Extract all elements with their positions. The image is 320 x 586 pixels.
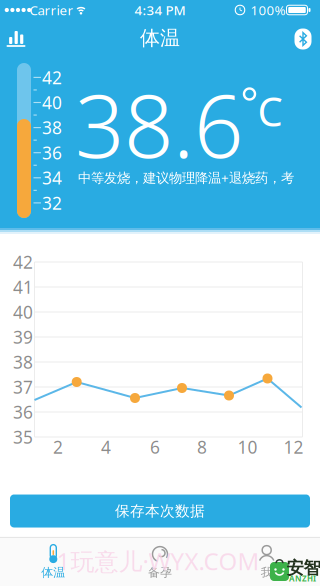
staticText: 我 <box>261 565 273 580</box>
staticText: 39 <box>13 325 33 348</box>
staticText: 2 <box>53 435 63 458</box>
staticText: 38 <box>13 350 33 373</box>
button[interactable]: 体温 <box>8 539 98 585</box>
staticText: 体温 <box>140 26 180 50</box>
button[interactable]: 备孕 <box>115 539 205 585</box>
staticText: 34 <box>42 166 62 189</box>
staticText: 安智 <box>286 557 320 579</box>
staticText: 体温 <box>41 565 65 580</box>
staticText: 4 <box>101 435 111 458</box>
staticText: 4:34 PM <box>134 1 185 19</box>
staticText: 42 <box>42 66 62 89</box>
button[interactable]: 我 <box>222 539 312 585</box>
staticText: 37 <box>13 375 33 398</box>
staticText: 42 <box>13 250 33 273</box>
staticText: Carrier <box>29 1 73 19</box>
staticText: 6 <box>150 435 160 458</box>
staticText: 1玩意儿·WYX.COM <box>56 545 259 577</box>
staticText: 40 <box>13 300 33 323</box>
staticText: C <box>257 84 282 137</box>
staticText: 保存本次数据 <box>115 502 205 520</box>
staticText: 40 <box>42 91 62 114</box>
staticText: 36 <box>42 141 62 164</box>
staticText: 32 <box>42 191 62 214</box>
button[interactable]: 历史记录 <box>6 26 32 52</box>
staticText: ANZHI <box>289 573 316 584</box>
button[interactable]: 蓝牙 <box>294 28 311 49</box>
staticText: 中等发烧，建议物理降温+退烧药，考 <box>78 169 294 186</box>
staticText: 100% <box>250 1 285 19</box>
staticText: 36 <box>13 400 33 423</box>
staticText: 35 <box>13 425 33 448</box>
staticText: 38.6 <box>75 66 243 182</box>
staticText: 备孕 <box>148 565 172 580</box>
staticText: 38 <box>42 116 62 139</box>
staticText: 8 <box>197 435 207 458</box>
staticText: 12 <box>283 435 303 458</box>
button[interactable]: 保存本次数据 <box>10 494 310 527</box>
staticText: 41 <box>13 275 33 298</box>
staticText: 10 <box>237 435 257 458</box>
